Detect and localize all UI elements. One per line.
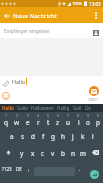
staticText: n — [71, 149, 75, 158]
staticText: Neue Nachricht — [13, 12, 57, 20]
staticText: Hallo — [12, 78, 26, 85]
button[interactable]: y — [16, 145, 27, 161]
staticText: m — [80, 149, 86, 158]
button[interactable]: x — [27, 145, 38, 161]
staticText: f — [42, 132, 45, 141]
button[interactable]: DE — [11, 162, 26, 176]
staticText: 150/1 — [88, 97, 99, 102]
staticText: h — [61, 132, 65, 141]
staticText: q — [4, 118, 8, 127]
staticText: y — [20, 149, 24, 158]
button[interactable]: n — [68, 145, 78, 161]
staticText: w — [14, 118, 20, 127]
button[interactable]: f — [38, 129, 48, 144]
button[interactable]: 1 — [0, 112, 11, 128]
button[interactable]: . — [75, 162, 84, 176]
button[interactable]: 9 — [83, 112, 93, 128]
staticText: b — [61, 149, 65, 158]
staticText: e — [26, 118, 30, 127]
button[interactable]: 0 — [93, 112, 103, 128]
button[interactable]: b — [58, 145, 68, 161]
staticText: Halloween — [31, 105, 54, 111]
staticText: Ge — [85, 105, 91, 111]
button[interactable]: Shift — [0, 144, 16, 161]
staticText: 7 — [67, 113, 70, 118]
staticText: d — [31, 132, 35, 141]
staticText: r — [37, 118, 40, 127]
button[interactable]: Backspace — [88, 144, 103, 161]
button[interactable]: Send — [89, 86, 99, 96]
staticText: ?123 — [2, 166, 12, 172]
staticText: 6 — [57, 113, 60, 118]
staticText: l — [92, 132, 94, 141]
button[interactable]: c — [38, 145, 48, 161]
button[interactable]: 8 — [73, 112, 83, 128]
button[interactable]: v — [48, 145, 58, 161]
button[interactable]: d — [28, 129, 38, 144]
staticText: . — [79, 166, 81, 173]
staticText: a — [10, 132, 14, 141]
staticText: p — [96, 118, 100, 127]
staticText: 9 — [87, 113, 90, 118]
staticText: , — [28, 166, 30, 173]
staticText: 0 — [97, 113, 100, 118]
staticText: k — [81, 132, 85, 141]
staticText: z — [56, 118, 60, 127]
button[interactable]: k — [78, 129, 88, 144]
staticText: Hallig — [57, 105, 70, 111]
button[interactable]: , — [24, 162, 34, 176]
button[interactable]: 5 — [43, 112, 53, 128]
staticText: 2 — [16, 113, 19, 118]
button[interactable]: Back — [1, 10, 13, 22]
staticText: 8 — [77, 113, 80, 118]
button[interactable]: l — [88, 129, 98, 144]
staticText: v — [51, 149, 55, 158]
staticText: Gall — [73, 105, 82, 111]
button[interactable]: Choose contact — [89, 26, 102, 39]
button[interactable]: g — [48, 129, 58, 144]
button[interactable]: More options — [90, 9, 102, 21]
staticText: s — [21, 132, 25, 141]
button[interactable]: ?123 — [0, 162, 15, 176]
button[interactable]: Attach — [0, 77, 11, 89]
staticText: x — [31, 149, 35, 158]
staticText: i — [78, 118, 80, 127]
staticText: 13:03 — [89, 1, 101, 7]
staticText: t — [47, 118, 50, 127]
button[interactable]: 2 — [11, 112, 22, 128]
button[interactable]: Enter — [90, 170, 99, 179]
button[interactable]: 3 — [22, 112, 33, 128]
staticText: u — [66, 118, 70, 127]
button[interactable]: s — [17, 129, 28, 144]
staticText: Empfänger eingeben — [4, 28, 50, 34]
staticText: 3 — [27, 113, 30, 118]
staticText: j — [72, 132, 74, 141]
button[interactable]: 4 — [33, 112, 43, 128]
staticText: o — [86, 118, 90, 127]
staticText: 4 — [37, 113, 40, 118]
staticText: Hallo — [2, 105, 14, 111]
staticText: c — [41, 149, 45, 158]
staticText: 1 — [5, 113, 8, 118]
button[interactable]: j — [68, 129, 78, 144]
staticText: Galle — [17, 105, 28, 111]
button[interactable]: 7 — [63, 112, 73, 128]
staticText: 100% — [72, 1, 83, 6]
button[interactable]: m — [78, 145, 88, 161]
button[interactable]: 6 — [53, 112, 63, 128]
button[interactable]: h — [58, 129, 68, 144]
button[interactable]: a — [6, 129, 17, 144]
staticText: g — [51, 132, 55, 141]
staticText: DE — [16, 166, 22, 172]
staticText: 5 — [47, 113, 50, 118]
button[interactable]: Emoji — [0, 90, 12, 102]
